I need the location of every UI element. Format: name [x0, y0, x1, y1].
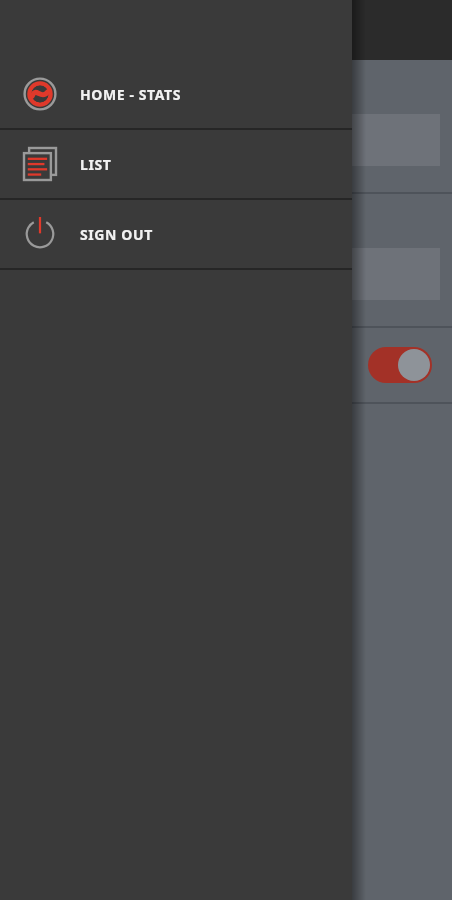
staticText: SIGN OUT — [80, 225, 153, 244]
button[interactable] — [368, 347, 432, 383]
staticText: LIST — [80, 155, 112, 174]
button[interactable]: SIGN OUT — [0, 200, 352, 268]
button[interactable]: HOME - STATS — [0, 60, 352, 128]
staticText: HOME - STATS — [80, 85, 182, 104]
button[interactable]: LIST — [0, 130, 352, 198]
